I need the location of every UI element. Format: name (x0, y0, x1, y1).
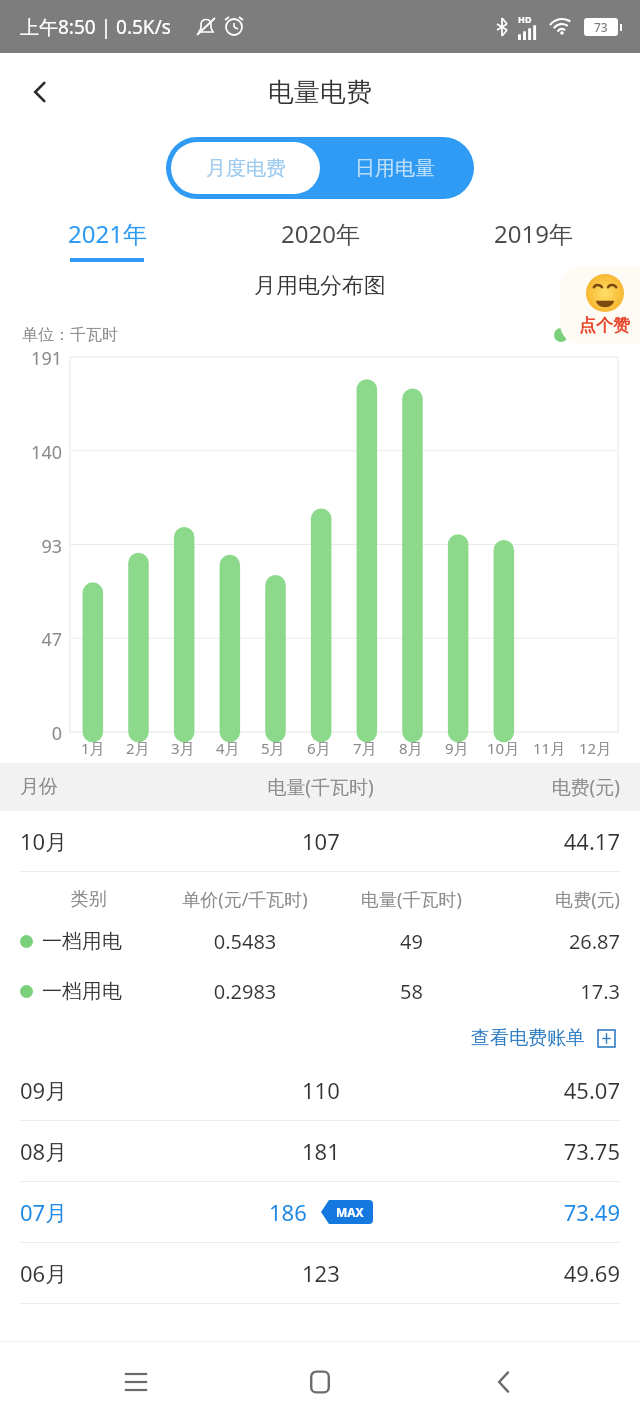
staticText: 12月 (579, 738, 612, 757)
button[interactable]: 点个赞 (560, 266, 640, 344)
staticText: 上午8:50 | 0.5K/s (20, 14, 171, 40)
staticText: 电量(千瓦时) (197, 774, 444, 800)
staticText: 类别 (20, 888, 157, 911)
staticText: 电量电费 (268, 76, 372, 109)
staticText: 2021年 (68, 217, 147, 250)
staticText: 186 (269, 1197, 307, 1227)
button[interactable]: 07月 (0, 1182, 640, 1242)
staticText: 09月 (20, 1075, 197, 1105)
staticText: 日用电量 (355, 156, 435, 181)
staticText: 73 (594, 19, 608, 35)
staticText: 月份 (20, 775, 197, 799)
staticText: 26.87 (490, 928, 620, 955)
button[interactable]: 2021年 (0, 217, 214, 262)
button[interactable]: 最近任务 (100, 1346, 172, 1418)
button[interactable]: 返回 (12, 64, 68, 120)
staticText: 107 (302, 826, 340, 856)
staticText: 月用电分布图 (0, 272, 640, 300)
staticText: 5月 (261, 738, 285, 757)
button[interactable]: 09月 (0, 1060, 640, 1120)
staticText: 191 (16, 346, 62, 371)
staticText: 10月 (20, 826, 197, 856)
staticText: 11月 (533, 738, 566, 757)
staticText: MAX (336, 1204, 364, 1220)
staticText: 一档用电 (42, 979, 122, 1004)
staticText: HD (518, 13, 532, 25)
button[interactable]: 月度电费 (171, 142, 320, 194)
staticText: 44.17 (444, 826, 620, 856)
staticText: 0.5483 (157, 928, 333, 955)
staticText: 一档 (578, 322, 618, 347)
staticText: 9月 (445, 738, 469, 757)
staticText: 月度电费 (206, 156, 286, 181)
staticText: 49.69 (444, 1258, 620, 1288)
staticText: 07月 (20, 1197, 197, 1227)
staticText: 47 (16, 627, 62, 652)
staticText: 73.49 (444, 1197, 620, 1227)
staticText: 电费(元) (444, 774, 620, 800)
staticText: 0 (16, 721, 62, 746)
staticText: 0.2983 (157, 978, 333, 1005)
staticText: 一档用电 (42, 929, 122, 954)
staticText: 73.75 (444, 1136, 620, 1166)
staticText: 08月 (20, 1136, 197, 1166)
staticText: 45.07 (444, 1075, 620, 1105)
staticText: 10月 (487, 738, 520, 757)
staticText: 电费(元) (490, 887, 620, 912)
button[interactable]: 日用电量 (320, 142, 469, 194)
staticText: 4月 (216, 738, 240, 757)
button[interactable]: 2020年 (214, 217, 427, 262)
staticText: 2月 (126, 738, 150, 757)
staticText: 93 (16, 534, 62, 559)
staticText: 6月 (307, 738, 331, 757)
button[interactable]: 2019年 (427, 217, 640, 262)
button[interactable]: 08月 (0, 1121, 640, 1181)
staticText: 110 (302, 1075, 340, 1105)
staticText: 06月 (20, 1258, 197, 1288)
staticText: 1月 (81, 738, 105, 757)
button[interactable]: 返回 (468, 1346, 540, 1418)
staticText: 140 (16, 440, 62, 465)
button[interactable]: 06月 (0, 1243, 640, 1303)
staticText: 8月 (399, 738, 423, 757)
staticText: 49 (333, 928, 490, 955)
staticText: 17.3 (490, 978, 620, 1005)
staticText: 3月 (171, 738, 195, 757)
button[interactable]: 主屏幕 (284, 1346, 356, 1418)
staticText: 2019年 (494, 217, 573, 250)
staticText: 单价(元/千瓦时) (157, 887, 333, 912)
staticText: 电量(千瓦时) (333, 887, 490, 912)
staticText: 点个赞 (579, 315, 630, 336)
staticText: 7月 (353, 738, 377, 757)
button[interactable]: 查看电费账单 (467, 1022, 620, 1054)
staticText: 58 (333, 978, 490, 1005)
staticText: 单位：千瓦时 (22, 325, 118, 345)
staticText: 查看电费账单 (471, 1026, 585, 1050)
staticText: 181 (302, 1136, 340, 1166)
staticText: 2020年 (281, 217, 360, 250)
staticText: 123 (302, 1258, 340, 1288)
